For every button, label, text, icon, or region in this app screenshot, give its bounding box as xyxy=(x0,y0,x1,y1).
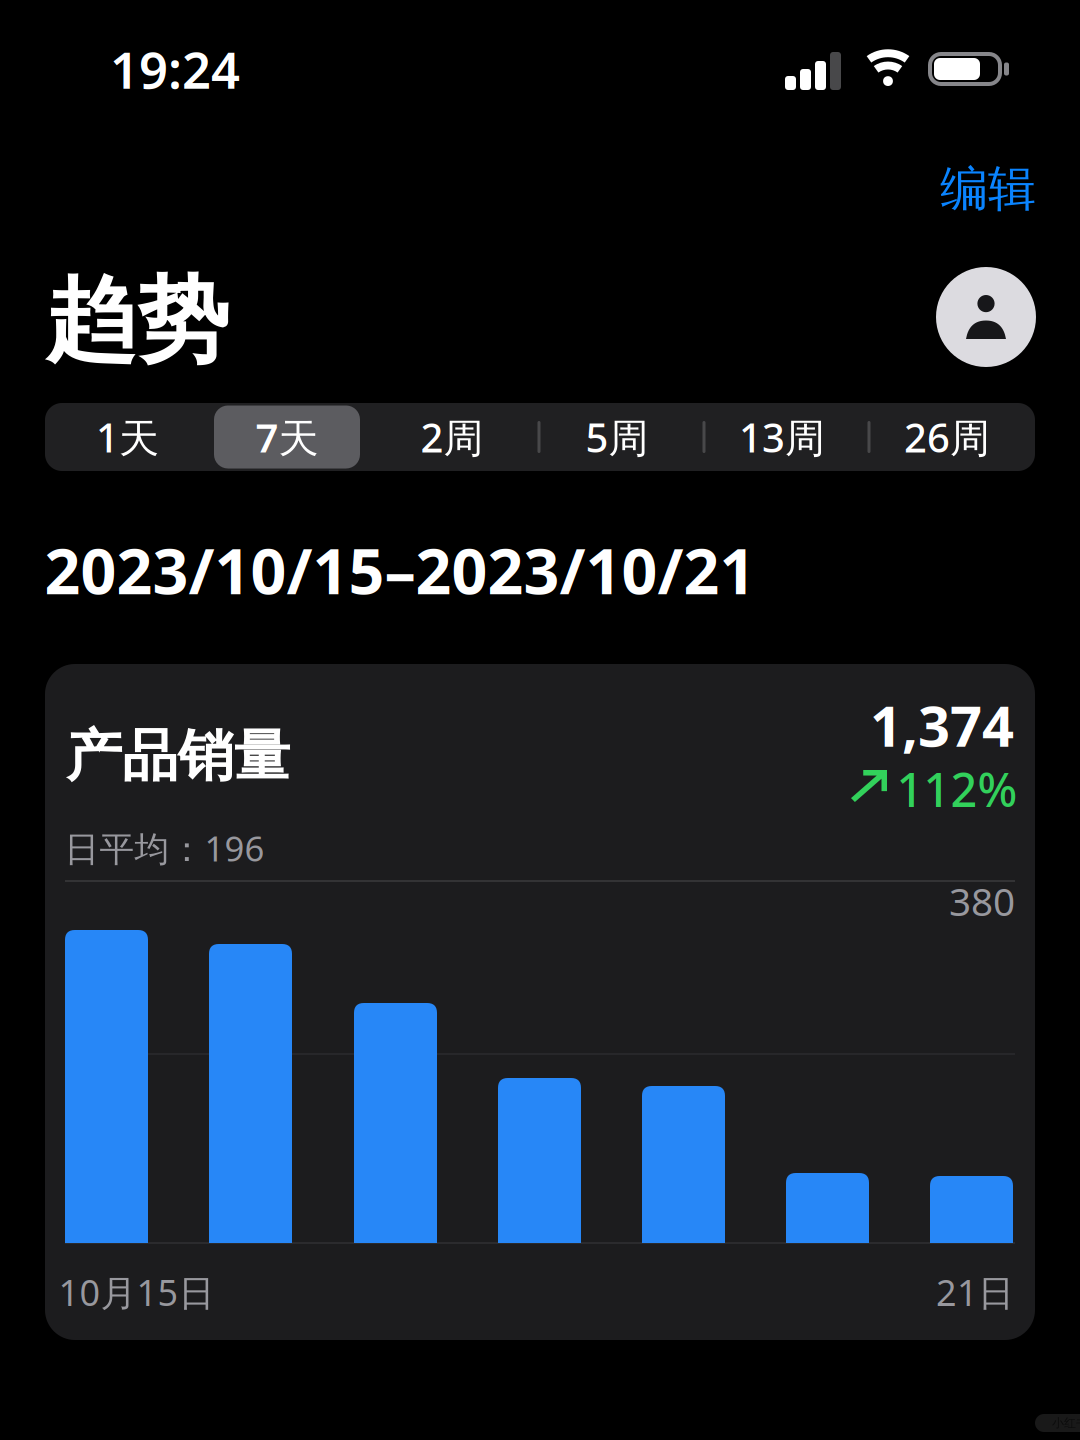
button[interactable]: 1天 xyxy=(47,403,207,471)
button[interactable]: 5周 xyxy=(537,403,697,471)
button[interactable]: 7天 xyxy=(207,403,367,471)
staticText: 1天 xyxy=(96,410,159,463)
staticText: 小红书 xyxy=(1052,1416,1080,1430)
staticText: 产品销量 xyxy=(66,722,290,790)
staticText: 1,374 xyxy=(870,688,1014,762)
staticText: 112% xyxy=(896,758,1017,820)
button[interactable]: 26周 xyxy=(867,403,1027,471)
staticText: 10月15日 xyxy=(58,1268,214,1316)
button[interactable]: 编辑 xyxy=(940,159,1036,218)
staticText: 21日 xyxy=(936,1268,1014,1316)
staticText: 5周 xyxy=(585,410,648,463)
staticText: 2023/10/15–2023/10/21 xyxy=(44,528,755,612)
button[interactable]: 13周 xyxy=(702,403,862,471)
staticText: 7天 xyxy=(255,410,318,463)
staticText: 趋势 xyxy=(45,264,229,377)
staticText: 26周 xyxy=(904,410,990,463)
staticText: 380 xyxy=(949,875,1015,927)
staticText: 13周 xyxy=(739,410,825,463)
button[interactable]: 账户 xyxy=(936,267,1036,367)
staticText: 日平均：196 xyxy=(64,825,264,871)
staticText: 2周 xyxy=(420,410,483,463)
staticText: 19:24 xyxy=(110,35,240,103)
staticText: 编辑 xyxy=(940,159,1036,218)
button[interactable]: 2周 xyxy=(372,403,532,471)
